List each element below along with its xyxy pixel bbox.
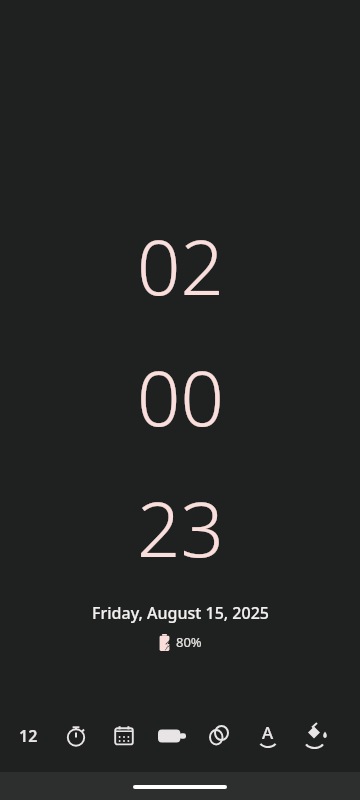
staticText: Friday, August 15, 2025 [92,602,269,624]
button[interactable]: Switch to 12 hour format [4,708,52,764]
staticText: 80% [176,633,202,651]
button[interactable]: Color fill [292,708,340,764]
staticText: 12 [19,725,38,747]
button[interactable]: Font [244,708,292,764]
button[interactable]: Stopwatch [52,708,100,764]
button[interactable]: Layers [196,708,244,764]
staticText: 02 [137,214,224,318]
button[interactable]: Calendar [100,708,148,764]
button[interactable]: Battery [148,708,196,764]
staticText: A [262,721,274,744]
staticText: 23 [137,476,224,580]
staticText: 00 [137,345,224,449]
